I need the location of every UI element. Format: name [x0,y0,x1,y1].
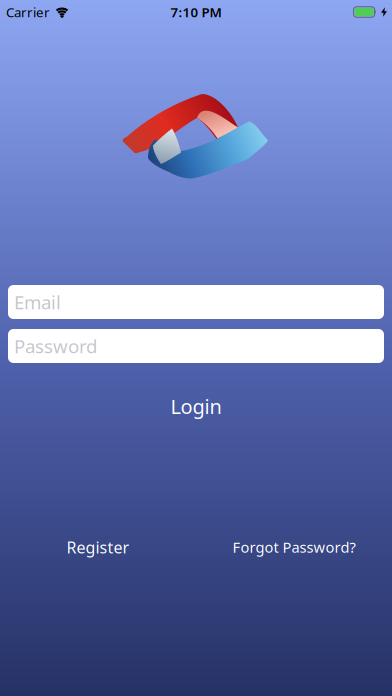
button[interactable]: Login [170,393,221,420]
button[interactable]: Forgot Password? [196,537,392,557]
staticText: Password [14,334,97,358]
button[interactable]: Register [0,537,196,558]
staticText: Email [14,290,61,314]
staticText: Login [170,393,221,420]
staticText: Forgot Password? [232,537,355,557]
button[interactable]: Email [0,285,392,319]
staticText: Register [66,537,129,558]
button[interactable]: Password [0,329,392,363]
staticText: Carrier [6,3,50,21]
staticText: 7:10 PM [170,3,221,21]
